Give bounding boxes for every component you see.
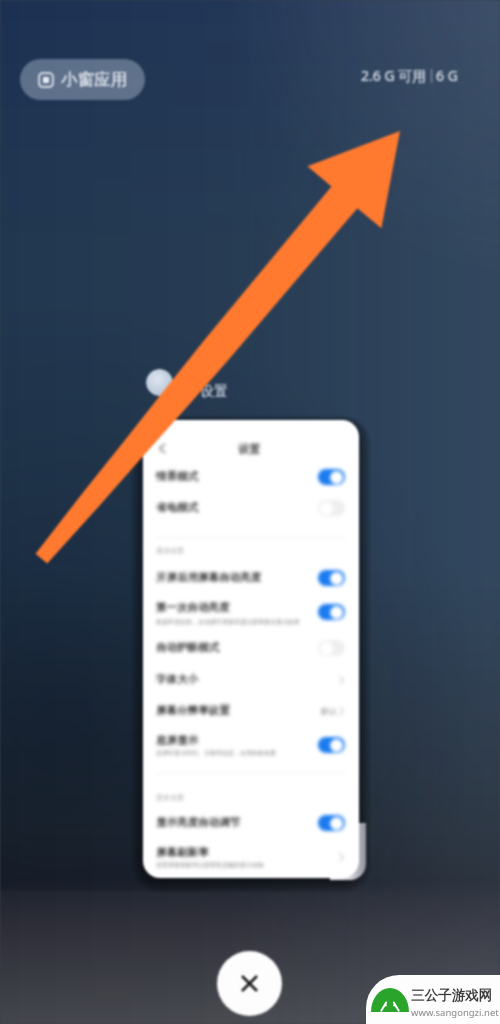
staticText: 屏幕刷新率	[156, 846, 209, 859]
button[interactable]: Off	[318, 500, 345, 516]
staticText: 情景模式	[156, 470, 198, 483]
staticText: 根据环境光线，自动调节屏幕亮度以获得最佳显示效果	[156, 618, 300, 626]
staticText: 设置	[238, 442, 260, 456]
staticText: 设置	[200, 383, 228, 401]
staticText: 显示亮度自动调节	[156, 816, 240, 829]
button[interactable]: Off	[318, 640, 345, 656]
staticText: 小窗应用	[61, 69, 127, 90]
staticText: 息屏显示	[156, 734, 198, 747]
button[interactable]: On	[318, 570, 345, 586]
other: Back	[159, 443, 165, 454]
staticText: 通用设置	[156, 546, 184, 555]
button[interactable]: 小窗应用	[20, 59, 145, 100]
staticText: 开屏后用屏幕自动亮度	[156, 571, 261, 584]
staticText: 更多设置	[156, 793, 184, 802]
staticText: 设置屏幕刷新率以获得更流畅的显示体验	[156, 861, 264, 869]
button[interactable]: On	[318, 737, 345, 753]
staticText: 第一次自动亮度	[156, 601, 230, 614]
staticText: 三公子游戏网	[411, 987, 492, 1004]
staticText: 默认	[321, 706, 337, 716]
staticText: 屏幕分辨率设置	[156, 704, 230, 717]
staticText: 字体大小	[156, 673, 198, 686]
button[interactable]: On	[318, 815, 345, 831]
staticText: 息屏时显示时间、日期等信息，会增加耗电量	[156, 749, 276, 757]
button[interactable]: Close	[217, 951, 282, 1016]
staticText: www.sangongzi.net	[411, 1006, 499, 1019]
button[interactable]: On	[318, 604, 345, 620]
staticText: 2.6 G 可用	[361, 66, 427, 85]
staticText: 6 G	[436, 66, 458, 85]
staticText: 省电模式	[156, 501, 198, 514]
staticText: 自动护眼模式	[156, 641, 219, 654]
button[interactable]: On	[318, 469, 345, 485]
